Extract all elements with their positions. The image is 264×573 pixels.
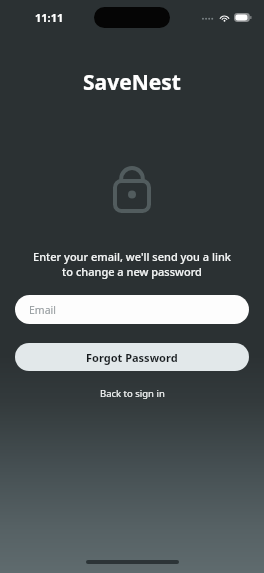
- button[interactable]: Email: [15, 295, 249, 324]
- staticText: Enter your email, we'll send you a link …: [33, 249, 231, 279]
- staticText: Email: [29, 303, 56, 317]
- staticText: Back to sign in: [100, 387, 165, 400]
- staticText: SaveNest: [83, 68, 181, 97]
- button[interactable]: Back to sign in: [90, 383, 175, 404]
- staticText: Forgot Password: [86, 350, 178, 365]
- staticText: 11:11: [35, 10, 64, 25]
- other: Locked: [113, 161, 151, 213]
- button[interactable]: Forgot Password: [15, 343, 249, 371]
